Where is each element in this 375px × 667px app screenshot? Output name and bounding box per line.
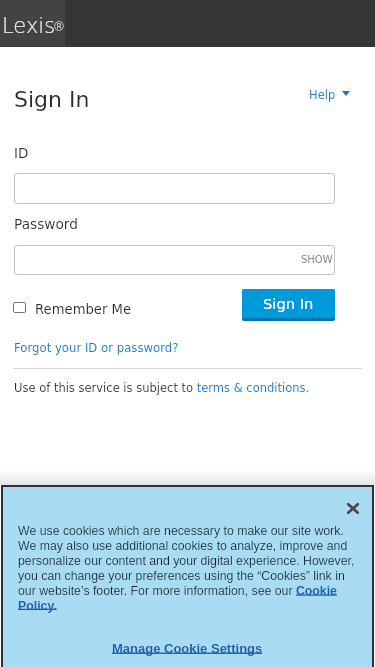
staticText: SHOW xyxy=(301,254,333,266)
button[interactable]: Sign In xyxy=(242,289,335,321)
button[interactable]: Close xyxy=(340,496,365,521)
staticText: ® xyxy=(53,20,65,34)
staticText: We use cookies which are necessary to ma… xyxy=(18,524,358,612)
button[interactable]: Forgot your ID or password? xyxy=(14,341,179,355)
staticText: Help xyxy=(309,88,336,101)
staticText: Sign In xyxy=(14,87,90,113)
staticText: Use of this service is subject to terms … xyxy=(14,381,310,394)
staticText: Remember Me xyxy=(35,302,132,317)
button[interactable]: SHOW xyxy=(14,245,335,275)
staticText: Password xyxy=(14,216,78,232)
staticText: ID xyxy=(14,145,29,161)
button[interactable]: Help xyxy=(309,88,344,101)
button[interactable]: Manage Cookie Settings xyxy=(112,641,263,656)
button[interactable]: Remember Me xyxy=(13,300,123,315)
staticText: Sign In xyxy=(263,295,314,312)
button[interactable] xyxy=(14,173,335,204)
staticText: Lexis xyxy=(2,14,56,38)
